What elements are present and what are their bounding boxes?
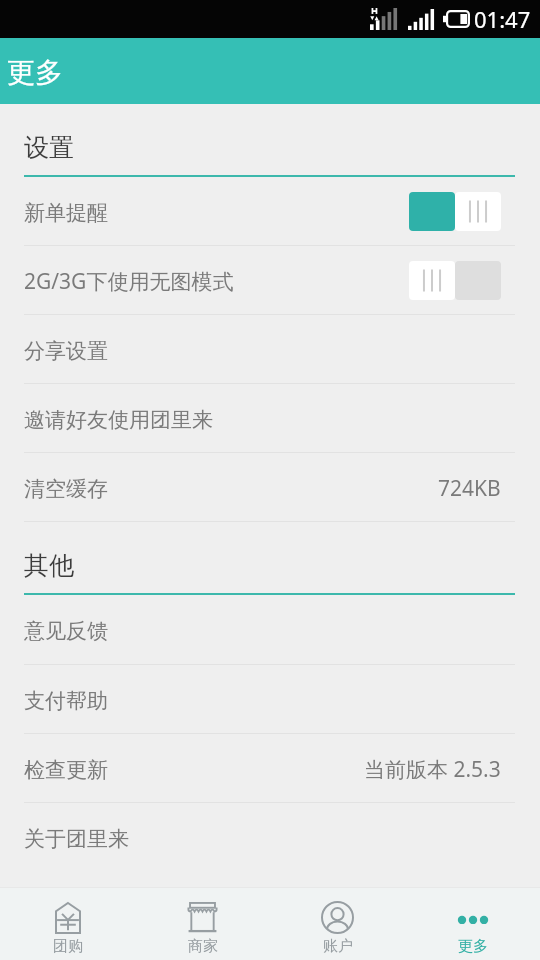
button[interactable]: 商家 [135, 888, 270, 960]
staticText: 检查更新 [24, 757, 108, 783]
staticText: 邀请好友使用团里来 [24, 407, 213, 433]
button[interactable]: 关于团里来 [0, 803, 540, 871]
staticText: 账户 [323, 937, 353, 956]
staticText: 更多 [7, 55, 63, 90]
button[interactable]: 意见反馈 [0, 595, 540, 664]
staticText: 新单提醒 [24, 200, 108, 226]
button[interactable]: 2G/3G下使用无图模式 [0, 246, 540, 314]
staticText: 支付帮助 [24, 688, 108, 714]
staticText: 724KB [438, 474, 501, 503]
staticText: 清空缓存 [24, 476, 108, 502]
button[interactable]: 邀请好友使用团里来 [0, 384, 540, 452]
button[interactable]: 检查更新 [0, 734, 540, 802]
button[interactable]: Toggle off [409, 261, 501, 300]
staticText: 商家 [188, 937, 218, 956]
button[interactable]: 账户 [270, 888, 405, 960]
button[interactable]: 支付帮助 [0, 665, 540, 733]
button[interactable]: 分享设置 [0, 315, 540, 383]
button[interactable]: 清空缓存 [0, 453, 540, 521]
staticText: 团购 [53, 937, 83, 956]
staticText: 意见反馈 [24, 618, 108, 644]
staticText: 分享设置 [24, 338, 108, 364]
button[interactable]: 更多 [405, 888, 540, 960]
staticText: 2G/3G下使用无图模式 [24, 267, 234, 296]
staticText: 关于团里来 [24, 826, 129, 852]
staticText: 当前版本 2.5.3 [364, 755, 501, 784]
staticText: 其他 [24, 550, 74, 581]
staticText: 设置 [24, 132, 74, 163]
staticText: 更多 [458, 937, 488, 956]
button[interactable]: 新单提醒 [0, 177, 540, 245]
button[interactable]: Toggle on [409, 192, 501, 231]
button[interactable]: 团购 [0, 888, 135, 960]
staticText: 01:47 [474, 4, 531, 34]
